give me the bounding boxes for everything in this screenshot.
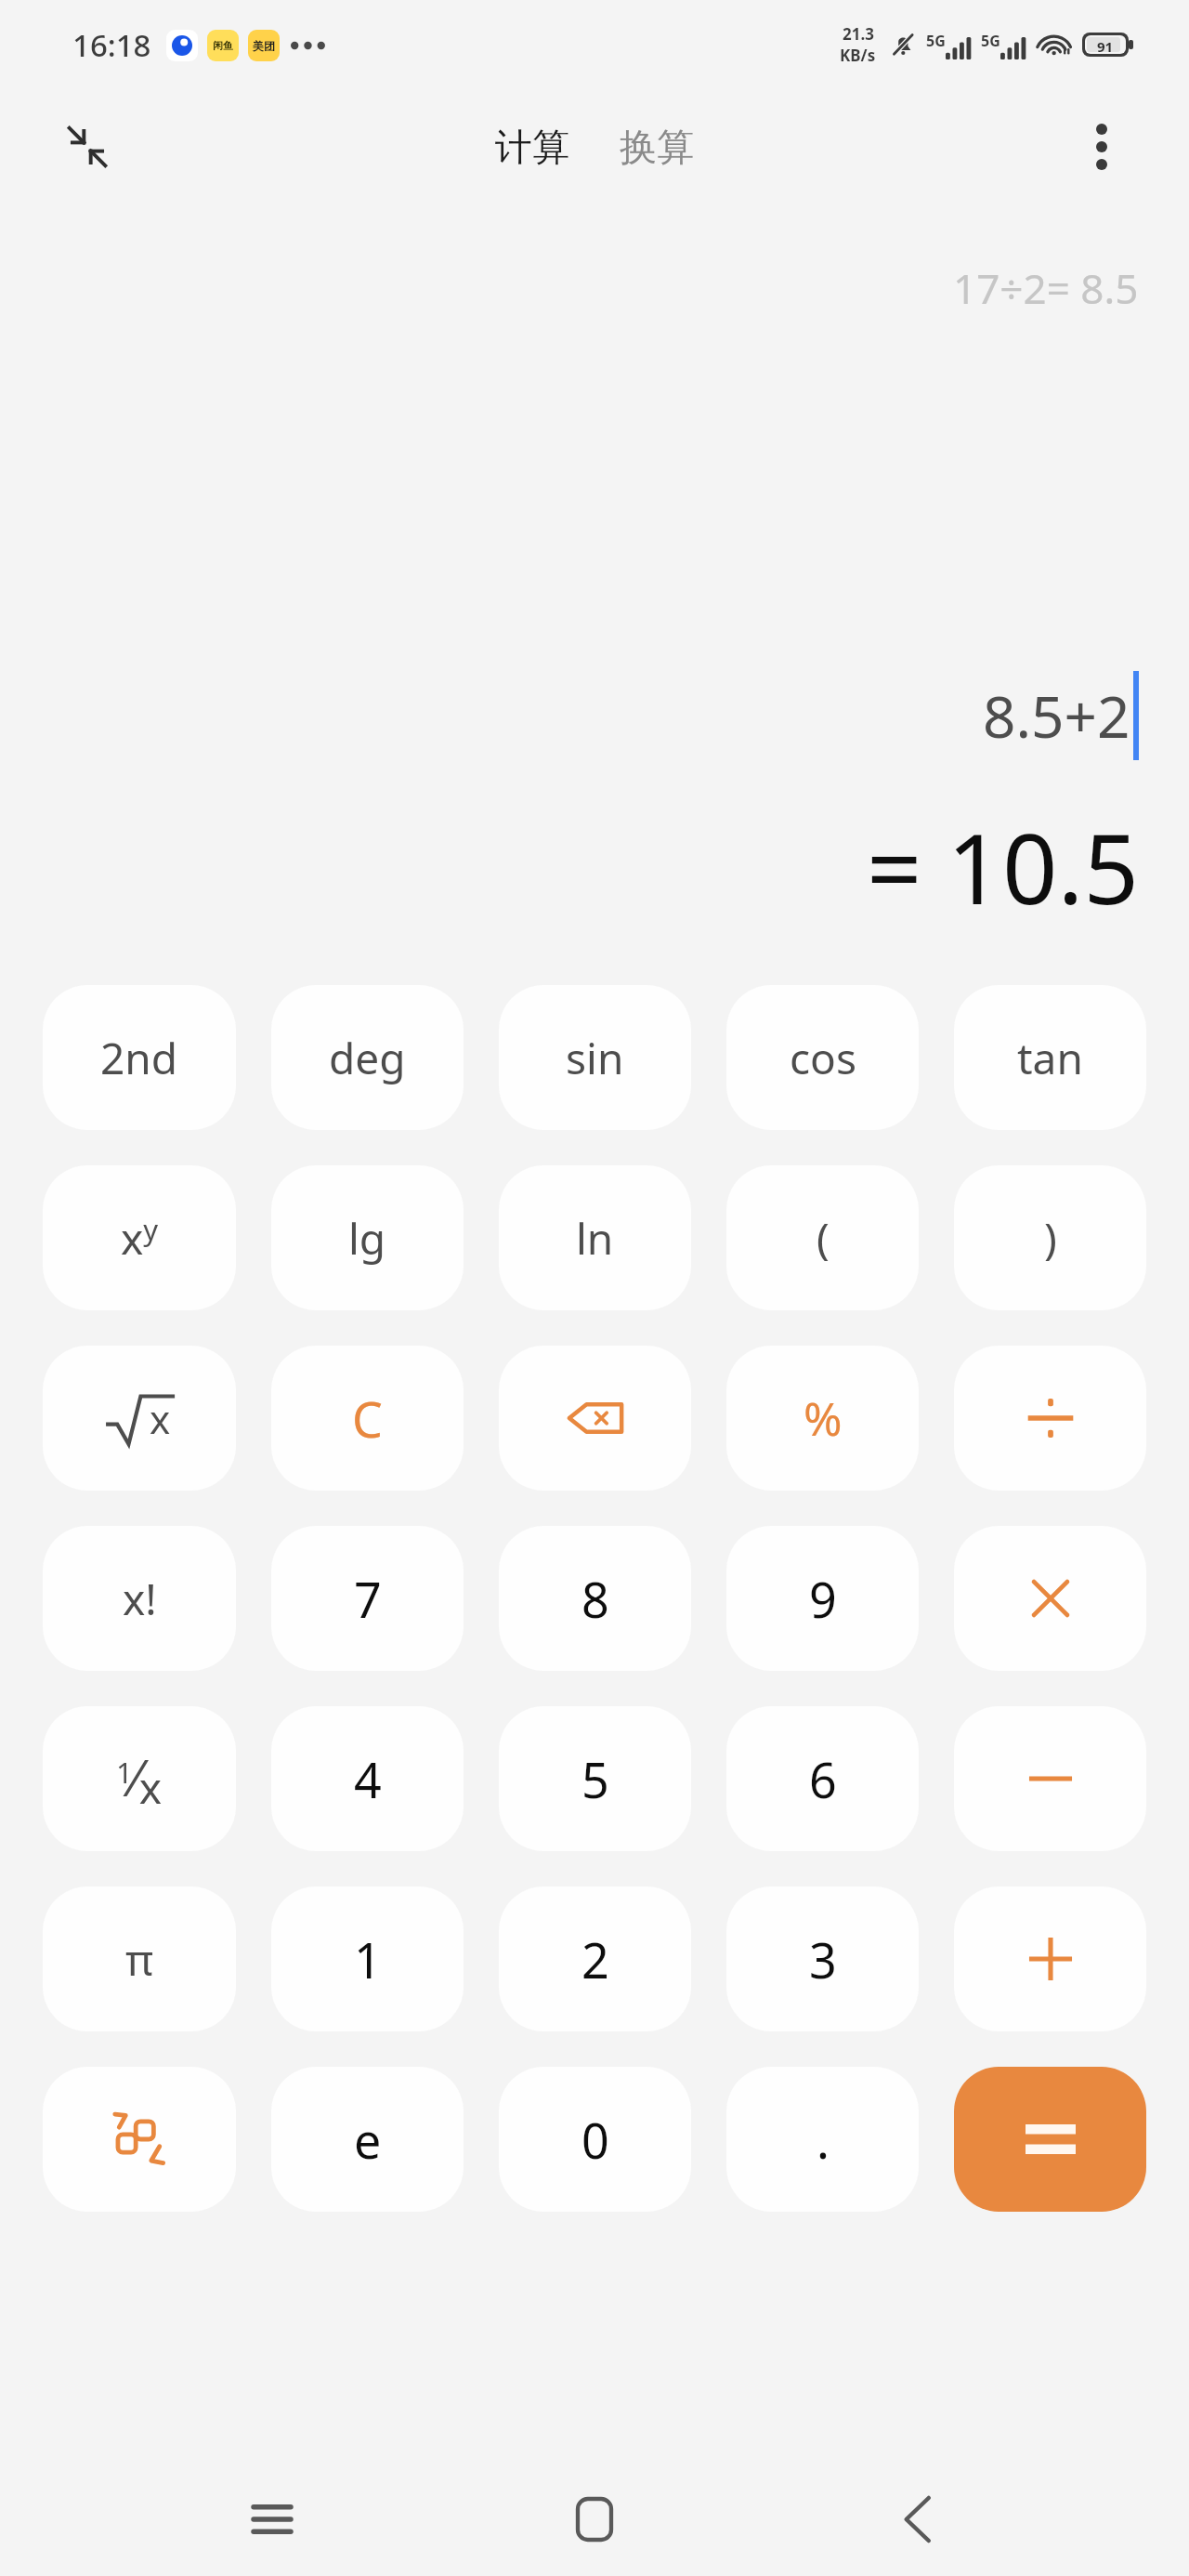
button[interactable]: 7 xyxy=(271,1526,464,1671)
staticText: 5G xyxy=(981,31,1000,51)
staticText: π xyxy=(125,1930,154,1989)
staticText: 21.3 xyxy=(843,23,874,45)
staticText: 计算 xyxy=(495,124,569,170)
button[interactable]: lg xyxy=(271,1165,464,1310)
button[interactable]: C xyxy=(271,1346,464,1491)
button[interactable]: Home xyxy=(543,2468,646,2570)
button[interactable]: π xyxy=(43,1886,236,2031)
button[interactable]: 换算 xyxy=(605,114,709,179)
button[interactable]: Equals xyxy=(954,2067,1146,2212)
staticText: 8 xyxy=(581,1566,609,1632)
button[interactable]: 4 xyxy=(271,1706,464,1851)
staticText: 4 xyxy=(354,1746,382,1812)
staticText: 5 xyxy=(581,1746,609,1812)
staticText: 1 xyxy=(354,1926,382,1992)
staticText: KB/s xyxy=(840,45,876,66)
staticText: 3 xyxy=(809,1926,837,1992)
staticText: 7 xyxy=(354,1566,382,1632)
button[interactable]: Back xyxy=(867,2468,969,2570)
staticText: tan xyxy=(1017,1029,1083,1087)
button[interactable]: x xyxy=(43,1346,236,1491)
button[interactable]: e xyxy=(271,2067,464,2212)
button[interactable]: 6 xyxy=(726,1706,919,1851)
staticText: ln xyxy=(576,1209,614,1268)
button[interactable]: ) xyxy=(954,1165,1146,1310)
staticText: 1⁄x xyxy=(116,1742,163,1816)
staticText: 换算 xyxy=(620,124,694,170)
staticText: 5G xyxy=(926,31,946,51)
staticText: 17÷2= 8.5 xyxy=(953,260,1139,316)
button[interactable]: % xyxy=(726,1346,919,1491)
staticText: 9 xyxy=(809,1566,837,1632)
button[interactable]: 1 xyxy=(271,1886,464,2031)
staticText: 0 xyxy=(581,2107,609,2173)
staticText: 2 xyxy=(581,1926,609,1992)
button[interactable]: cos xyxy=(726,985,919,1130)
button[interactable]: tan xyxy=(954,985,1146,1130)
staticText: ) xyxy=(1044,1209,1057,1268)
button[interactable]: Divide xyxy=(954,1346,1146,1491)
button[interactable]: Plus xyxy=(954,1886,1146,2031)
button[interactable]: 2 xyxy=(499,1886,691,2031)
staticText: e xyxy=(354,2107,382,2173)
button[interactable]: 计算 xyxy=(480,114,584,179)
staticText: x! xyxy=(123,1570,157,1628)
staticText: 8.5+2 xyxy=(983,677,1130,755)
staticText: deg xyxy=(329,1029,406,1087)
button[interactable]: ln xyxy=(499,1165,691,1310)
staticText: C xyxy=(352,1386,383,1452)
button[interactable]: . xyxy=(726,2067,919,2212)
staticText: . xyxy=(817,2107,830,2173)
button[interactable]: deg xyxy=(271,985,464,1130)
button[interactable]: Convert xyxy=(43,2067,236,2212)
staticText: 6 xyxy=(809,1746,837,1812)
button[interactable]: 9 xyxy=(726,1526,919,1671)
button[interactable]: Minus xyxy=(954,1706,1146,1851)
button[interactable]: Backspace xyxy=(499,1346,691,1491)
staticText: sin xyxy=(566,1029,624,1087)
staticText: xy xyxy=(121,1209,159,1268)
staticText: cos xyxy=(790,1029,856,1087)
staticText: x xyxy=(150,1392,171,1444)
button[interactable]: xy xyxy=(43,1165,236,1310)
staticText: 91 xyxy=(1097,37,1114,52)
staticText: 16:18 xyxy=(72,24,151,66)
staticText: = 10.5 xyxy=(867,801,1139,933)
button[interactable]: ( xyxy=(726,1165,919,1310)
button[interactable]: 8 xyxy=(499,1526,691,1671)
staticText: lg xyxy=(348,1209,386,1268)
button[interactable]: Recent apps xyxy=(221,2468,323,2570)
button[interactable]: x! xyxy=(43,1526,236,1671)
staticText: 闲鱼 xyxy=(213,39,233,52)
button[interactable]: Collapse xyxy=(52,112,123,182)
staticText: 美团 xyxy=(253,39,275,53)
button[interactable]: 3 xyxy=(726,1886,919,2031)
button[interactable]: sin xyxy=(499,985,691,1130)
button[interactable]: 2nd xyxy=(43,985,236,1130)
button[interactable]: 5 xyxy=(499,1706,691,1851)
button[interactable]: More options xyxy=(1066,112,1137,182)
button[interactable]: 0 xyxy=(499,2067,691,2212)
button[interactable]: Multiply xyxy=(954,1526,1146,1671)
staticText: % xyxy=(804,1387,843,1450)
button[interactable]: 1⁄x xyxy=(43,1706,236,1851)
staticText: 2nd xyxy=(100,1029,178,1087)
staticText: ( xyxy=(817,1209,830,1268)
